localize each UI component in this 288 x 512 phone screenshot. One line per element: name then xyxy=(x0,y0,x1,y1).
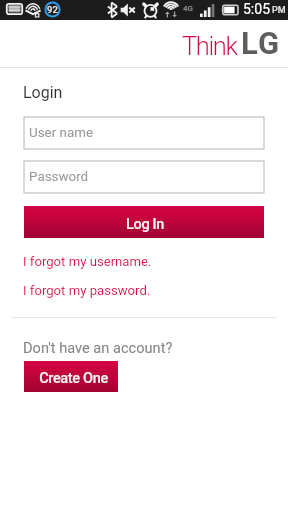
staticText: Create One xyxy=(39,370,108,387)
staticText: Don't have an account? xyxy=(23,339,173,356)
button[interactable]: Password xyxy=(24,161,264,193)
button[interactable]: Log In xyxy=(24,206,264,238)
staticText: Log In xyxy=(126,216,164,233)
button[interactable]: User name xyxy=(24,117,264,149)
staticText: User name xyxy=(29,125,94,141)
staticText: LG xyxy=(241,25,281,55)
button[interactable]: I forgot my password. xyxy=(23,283,151,298)
staticText: 4G xyxy=(183,4,193,13)
staticText: Password xyxy=(29,169,89,185)
staticText: I forgot my password. xyxy=(23,283,151,298)
button[interactable]: I forgot my username. xyxy=(23,254,152,269)
staticText: Login xyxy=(23,83,63,102)
button[interactable]: Create One xyxy=(24,361,118,392)
staticText: I forgot my username. xyxy=(23,254,152,269)
staticText: 92 xyxy=(47,4,58,15)
staticText: Think xyxy=(182,31,237,61)
staticText: PM xyxy=(272,5,286,16)
staticText: 5:05 xyxy=(243,1,270,17)
button[interactable]: Think LG xyxy=(180,28,280,58)
